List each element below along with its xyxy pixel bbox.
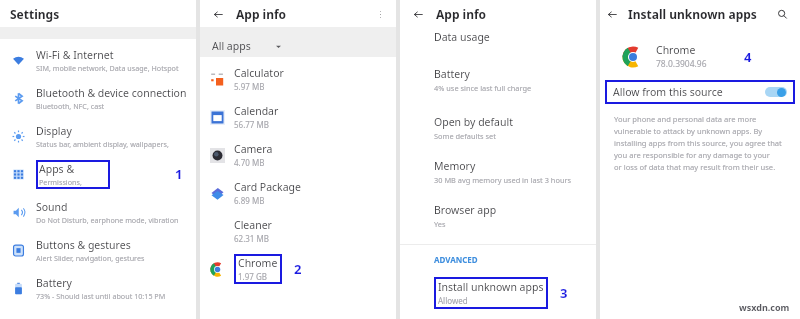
button[interactable]: Cleaner <box>200 212 396 250</box>
staticText: Wi-Fi & Internet <box>36 48 114 62</box>
staticText: Status bar, ambient display, wallpapers,… <box>36 139 190 149</box>
staticText: SIM, mobile network, Data usage, Hotspot <box>36 63 179 73</box>
staticText: Sound <box>36 200 68 214</box>
staticText: App info <box>436 6 487 22</box>
staticText: installing apps from this source, you ag… <box>614 138 782 148</box>
staticText: 2 <box>294 260 302 278</box>
staticText: App info <box>236 6 287 22</box>
button[interactable]: Browser app <box>400 198 596 238</box>
staticText: Browser app <box>434 203 497 217</box>
staticText: 1 <box>175 165 183 183</box>
button[interactable]: Calculator <box>200 60 396 98</box>
staticText: Permissions, default apps <box>39 177 107 187</box>
button[interactable]: Sound <box>0 193 196 231</box>
staticText: Calendar <box>234 104 279 118</box>
staticText: Camera <box>234 142 273 156</box>
staticText: Install unknown apps <box>628 6 757 22</box>
staticText: or loss of data that may result from the… <box>614 162 776 172</box>
staticText: Bluetooth, NFC, cast <box>36 101 105 111</box>
staticText: Alert Slider, navigation, gestures <box>36 253 145 263</box>
button[interactable]: Back <box>210 6 226 22</box>
staticText: Allowed <box>438 295 468 306</box>
button[interactable]: Install unknown apps <box>400 277 596 309</box>
button[interactable]: All apps <box>200 35 396 57</box>
button[interactable]: Apps & notifications <box>0 155 196 193</box>
button[interactable]: More options <box>372 6 388 22</box>
button[interactable]: Allow from this source <box>605 80 795 104</box>
staticText: vulnerable to attack by unknown apps. By <box>614 126 763 136</box>
staticText: Memory <box>434 159 476 173</box>
staticText: Yes <box>434 219 446 229</box>
staticText: ADVANCED <box>434 254 478 265</box>
staticText: Battery <box>36 276 72 290</box>
staticText: 73% - Should last until about 10:15 PM <box>36 291 166 301</box>
button[interactable]: Calendar <box>200 98 396 136</box>
staticText: 3 <box>560 284 568 302</box>
staticText: 4% use since last full charge <box>434 83 532 93</box>
staticText: Chrome <box>238 256 278 270</box>
staticText: Data usage <box>434 30 490 44</box>
button[interactable]: Chrome <box>200 250 396 288</box>
staticText: Cleaner <box>234 218 272 232</box>
staticText: 1.97 GB <box>238 271 267 282</box>
staticText: Buttons & gestures <box>36 238 131 252</box>
staticText: Open by default <box>434 115 514 129</box>
button[interactable]: Wi-Fi & Internet <box>0 41 196 79</box>
button[interactable]: Display <box>0 117 196 155</box>
staticText: Chrome <box>656 43 696 57</box>
staticText: you are responsible for any damage to yo… <box>614 150 786 160</box>
button[interactable]: Buttons & gestures <box>0 231 196 269</box>
button[interactable]: Bluetooth & device connection <box>0 79 196 117</box>
button[interactable]: Open by default <box>400 110 596 150</box>
staticText: Allow from this source <box>613 85 723 99</box>
button[interactable]: Battery <box>400 62 596 102</box>
staticText: Battery <box>434 67 470 81</box>
staticText: 30 MB avg memory used in last 3 hours <box>434 175 572 185</box>
staticText: 62.31 MB <box>234 233 269 244</box>
button[interactable]: Camera <box>200 136 396 174</box>
staticText: Card Package <box>234 180 302 194</box>
staticText: Apps & notifications <box>39 162 107 176</box>
staticText: Your phone and personal data are more <box>614 114 757 124</box>
staticText: 4.70 MB <box>234 157 265 168</box>
staticText: 4 <box>744 48 752 66</box>
staticText: Install unknown apps <box>438 280 544 294</box>
staticText: Some defaults set <box>434 131 496 141</box>
button[interactable]: Memory <box>400 154 596 194</box>
staticText: 5.97 MB <box>234 81 265 92</box>
button[interactable]: Battery <box>0 269 196 307</box>
staticText: Display <box>36 124 72 138</box>
button[interactable]: Back <box>604 6 620 22</box>
staticText: wsxdn.com <box>739 301 790 313</box>
staticText: Bluetooth & device connection <box>36 86 187 100</box>
staticText: Do Not Disturb, earphone mode, vibration <box>36 215 179 225</box>
staticText: 78.0.3904.96 <box>656 58 707 70</box>
staticText: All apps <box>212 39 251 53</box>
staticText: 56.77 MB <box>234 119 269 130</box>
button[interactable]: Card Package <box>200 174 396 212</box>
button[interactable]: Search <box>774 6 790 22</box>
staticText: 6.89 MB <box>234 195 265 206</box>
staticText: Calculator <box>234 66 284 80</box>
button[interactable]: Back <box>410 6 426 22</box>
staticText: Settings <box>10 6 60 22</box>
